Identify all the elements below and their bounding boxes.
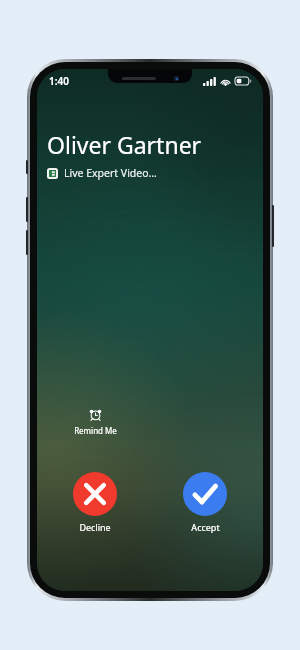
button[interactable]: Accept call [173,472,237,533]
staticText: Remind Me [74,425,117,436]
staticText: Oliver Gartner [47,129,202,160]
staticText: Decline [79,521,111,533]
staticText: Live Expert Video… [64,166,157,180]
staticText: 1:40 [49,74,69,88]
button[interactable]: Remind Me [63,406,127,438]
staticText: Accept [191,521,220,533]
button[interactable]: Decline call [63,472,127,533]
